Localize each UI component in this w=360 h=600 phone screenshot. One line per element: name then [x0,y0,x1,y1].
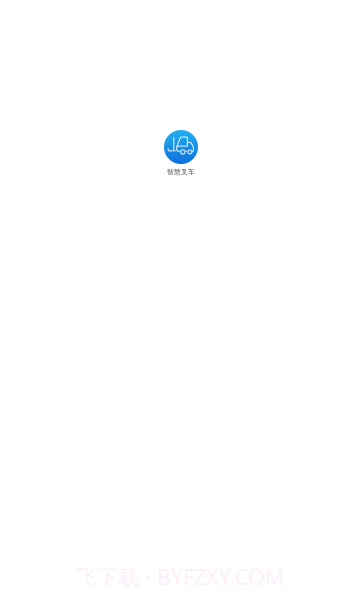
staticText: 智慧叉车 [167,168,195,176]
staticText: 飞下载 · BYFZXY.COM [76,563,284,591]
button[interactable]: 智慧叉车 [149,130,213,176]
